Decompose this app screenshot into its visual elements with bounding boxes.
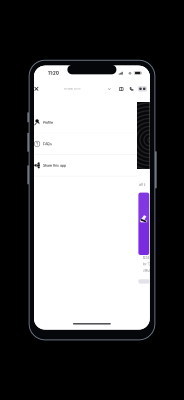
button[interactable]: Close menu <box>32 83 41 95</box>
button[interactable]: Nearest store <box>64 83 80 95</box>
button[interactable]: Catalogue <box>117 83 125 95</box>
button[interactable]: Call us <box>127 83 135 95</box>
staticText: 1234 <box>142 256 149 260</box>
staticText: Nearest store <box>64 87 80 90</box>
button[interactable]: Change store <box>106 83 113 95</box>
button[interactable]: Profile <box>34 112 137 133</box>
button[interactable]: Store options <box>137 83 147 95</box>
button[interactable]: FAQs <box>34 133 137 154</box>
staticText: cMul <box>142 268 150 272</box>
staticText: all <box>139 183 143 187</box>
button[interactable]: Share this app <box>34 155 137 176</box>
staticText: FAQs <box>43 142 52 146</box>
staticText: Profile <box>43 120 53 125</box>
staticText: Share this app <box>43 163 66 168</box>
staticText: for 'D <box>142 262 150 266</box>
staticText: 11:20 <box>48 70 59 76</box>
